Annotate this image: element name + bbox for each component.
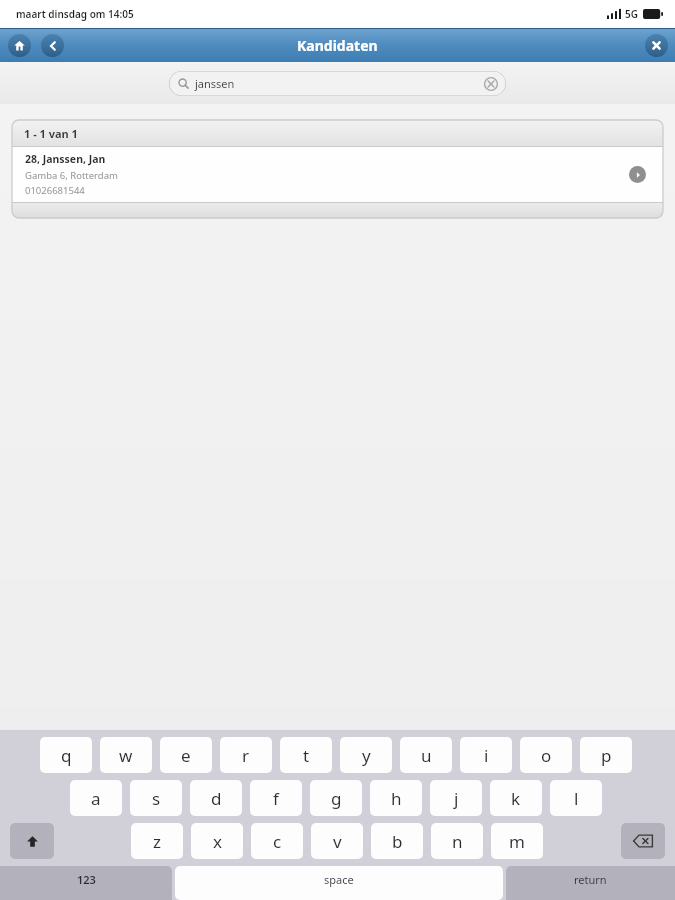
staticText: r bbox=[242, 744, 250, 767]
staticText: c bbox=[273, 830, 282, 853]
staticText: a bbox=[91, 787, 101, 810]
button[interactable]: t bbox=[280, 737, 332, 773]
button[interactable]: return bbox=[506, 866, 675, 900]
staticText: i bbox=[484, 744, 489, 767]
staticText: janssen bbox=[195, 76, 235, 91]
staticText: u bbox=[421, 744, 432, 767]
button[interactable]: janssen bbox=[169, 71, 506, 96]
button[interactable]: Clear search bbox=[484, 77, 498, 91]
button[interactable]: c bbox=[251, 823, 303, 859]
staticText: maart dinsdag om 14:05 bbox=[16, 7, 134, 21]
button[interactable]: v bbox=[311, 823, 363, 859]
staticText: k bbox=[511, 787, 521, 810]
staticText: 5G bbox=[625, 7, 638, 21]
staticText: 01026681544 bbox=[25, 184, 85, 197]
staticText: b bbox=[392, 830, 403, 853]
button[interactable]: Backspace bbox=[621, 823, 665, 859]
staticText: l bbox=[574, 787, 579, 810]
staticText: y bbox=[362, 744, 371, 767]
button[interactable]: d bbox=[190, 780, 242, 816]
staticText: n bbox=[452, 830, 463, 853]
button[interactable]: Back bbox=[41, 34, 64, 57]
button[interactable]: 28, Janssen, Jan bbox=[12, 147, 663, 202]
button[interactable]: p bbox=[580, 737, 632, 773]
button[interactable]: z bbox=[131, 823, 183, 859]
button[interactable]: j bbox=[430, 780, 482, 816]
button[interactable]: q bbox=[40, 737, 92, 773]
staticText: Kandidaten bbox=[297, 36, 378, 55]
button[interactable]: a bbox=[70, 780, 122, 816]
staticText: t bbox=[303, 744, 310, 767]
staticText: v bbox=[333, 830, 342, 853]
staticText: space bbox=[324, 872, 354, 887]
button[interactable]: e bbox=[160, 737, 212, 773]
button[interactable]: Close bbox=[645, 34, 668, 57]
staticText: z bbox=[153, 830, 161, 853]
staticText: h bbox=[391, 787, 402, 810]
button[interactable]: g bbox=[310, 780, 362, 816]
button[interactable]: Shift bbox=[10, 823, 54, 859]
staticText: x bbox=[213, 830, 222, 853]
button[interactable]: k bbox=[490, 780, 542, 816]
button[interactable]: r bbox=[220, 737, 272, 773]
staticText: s bbox=[152, 787, 161, 810]
staticText: g bbox=[331, 787, 342, 810]
staticText: 123 bbox=[77, 872, 96, 887]
button[interactable]: o bbox=[520, 737, 572, 773]
staticText: 1 - 1 van 1 bbox=[24, 126, 78, 141]
staticText: 28, Janssen, Jan bbox=[25, 152, 106, 166]
staticText: m bbox=[509, 830, 525, 853]
button[interactable]: u bbox=[400, 737, 452, 773]
staticText: return bbox=[574, 872, 607, 887]
button[interactable]: h bbox=[370, 780, 422, 816]
button[interactable]: space bbox=[175, 866, 503, 900]
button[interactable]: f bbox=[250, 780, 302, 816]
staticText: d bbox=[211, 787, 222, 810]
staticText: e bbox=[181, 744, 191, 767]
staticText: w bbox=[119, 744, 133, 767]
button[interactable]: x bbox=[191, 823, 243, 859]
button[interactable]: m bbox=[491, 823, 543, 859]
button[interactable]: s bbox=[130, 780, 182, 816]
staticText: o bbox=[541, 744, 552, 767]
button[interactable]: i bbox=[460, 737, 512, 773]
staticText: q bbox=[61, 744, 72, 767]
staticText: Gamba 6, Rotterdam bbox=[25, 169, 118, 182]
button[interactable]: 123 bbox=[0, 866, 172, 900]
button[interactable]: Home bbox=[8, 34, 31, 57]
staticText: f bbox=[273, 787, 279, 810]
button[interactable]: b bbox=[371, 823, 423, 859]
staticText: p bbox=[601, 744, 612, 767]
button[interactable]: l bbox=[550, 780, 602, 816]
button[interactable]: y bbox=[340, 737, 392, 773]
staticText: j bbox=[454, 787, 459, 810]
button[interactable]: n bbox=[431, 823, 483, 859]
button[interactable]: w bbox=[100, 737, 152, 773]
